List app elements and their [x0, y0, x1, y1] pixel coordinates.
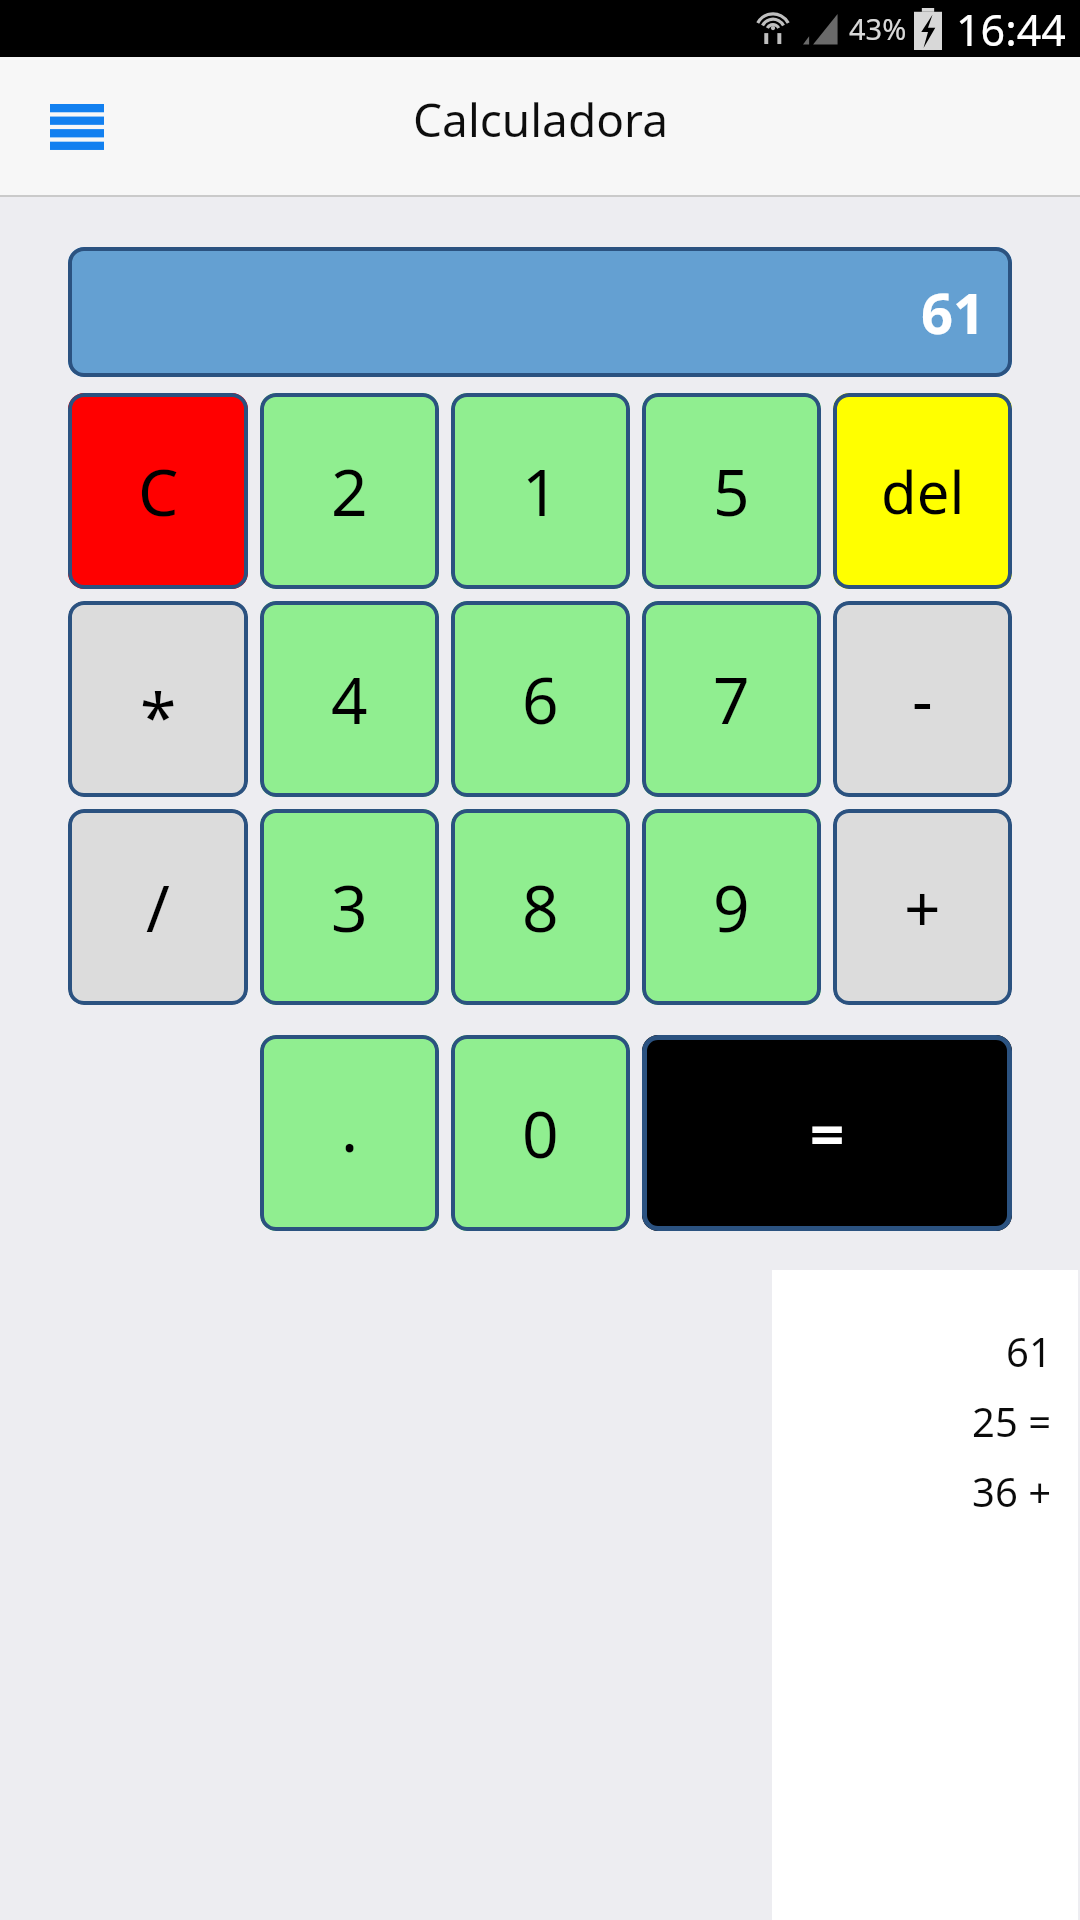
staticText: 61 [1006, 1324, 1052, 1378]
staticText: + [904, 864, 941, 951]
staticText: 8 [522, 864, 559, 951]
button[interactable]: 2 [260, 393, 439, 589]
button[interactable]: Menu [44, 96, 110, 158]
staticText: del [881, 452, 965, 531]
staticText: 43% [849, 9, 907, 48]
button[interactable]: - [833, 601, 1012, 797]
staticText: 2 [331, 448, 368, 535]
button[interactable]: / [68, 809, 248, 1005]
staticText: 5 [713, 448, 750, 535]
staticText: . [341, 1084, 359, 1171]
button[interactable]: . [260, 1035, 439, 1231]
staticText: 25 = [972, 1394, 1052, 1448]
button[interactable]: 61 [772, 1270, 1078, 1920]
button[interactable]: 7 [642, 601, 821, 797]
staticText: 0 [522, 1090, 559, 1177]
staticText: 1 [522, 448, 559, 535]
staticText: 3 [331, 864, 368, 951]
staticText: 4 [331, 656, 368, 743]
staticText: * [140, 670, 177, 760]
staticText: C [138, 448, 179, 535]
button[interactable]: 6 [451, 601, 630, 797]
button[interactable]: del [833, 393, 1012, 589]
button[interactable]: 8 [451, 809, 630, 1005]
button[interactable]: C [68, 393, 248, 589]
staticText: 16:44 [956, 0, 1066, 57]
staticText: 7 [713, 656, 750, 743]
staticText: 36 + [972, 1464, 1052, 1518]
staticText: 6 [522, 656, 559, 743]
button[interactable]: 61 [68, 247, 1012, 377]
button[interactable]: 0 [451, 1035, 630, 1231]
button[interactable]: = [642, 1035, 1012, 1231]
staticText: 9 [713, 864, 750, 951]
button[interactable]: 1 [451, 393, 630, 589]
button[interactable]: 5 [642, 393, 821, 589]
button[interactable]: * [68, 601, 248, 797]
button[interactable]: 4 [260, 601, 439, 797]
button[interactable]: + [833, 809, 1012, 1005]
staticText: / [146, 864, 170, 951]
staticText: - [912, 656, 933, 743]
staticText: Calculadora [413, 88, 668, 151]
button[interactable]: 9 [642, 809, 821, 1005]
staticText: 61 [921, 274, 986, 350]
button[interactable]: 3 [260, 809, 439, 1005]
staticText: = [810, 1092, 845, 1174]
